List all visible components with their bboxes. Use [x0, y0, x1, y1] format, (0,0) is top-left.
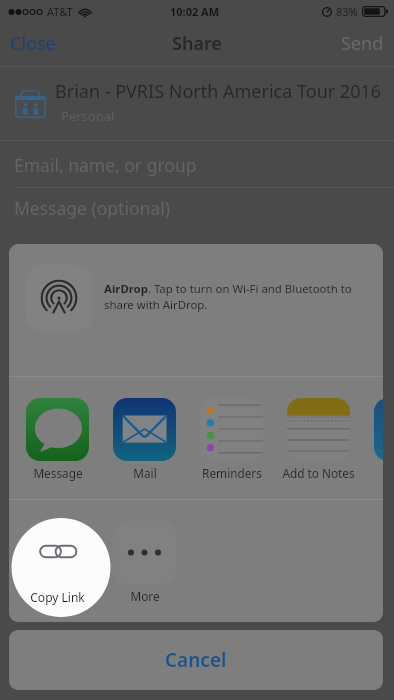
button[interactable]: AirDrop. Tap to turn on Wi-Fi and Blueto…	[9, 244, 383, 376]
staticText: Add to Notes	[282, 465, 355, 481]
staticText: Mail	[133, 465, 157, 481]
staticText: AT&T	[47, 4, 73, 19]
staticText: Message	[33, 465, 83, 481]
button[interactable]: Send	[331, 25, 394, 62]
staticText: Send	[341, 31, 384, 56]
button[interactable]	[26, 398, 89, 485]
staticText: Email, name, or group	[14, 153, 197, 177]
button[interactable]: Cancel	[9, 630, 383, 690]
staticText: 83%	[336, 4, 358, 19]
staticText: Copy Link	[31, 588, 85, 604]
staticText: More	[130, 588, 160, 604]
button[interactable]: Brian - PVRIS North America Tour 2016	[0, 67, 394, 140]
button[interactable]	[200, 398, 263, 485]
button[interactable]	[113, 521, 176, 608]
staticText: Copy Link	[30, 589, 85, 605]
staticText: AirDrop. Tap to turn on Wi-Fi and Blueto…	[104, 281, 352, 313]
staticText: 10:02 AM	[170, 4, 220, 19]
button[interactable]: Close	[0, 25, 66, 62]
button[interactable]: Email, name, or group	[0, 141, 394, 187]
staticText: Brian - PVRIS North America Tour 2016	[55, 79, 382, 104]
staticText: Close	[10, 31, 56, 56]
staticText: Message (optional)	[14, 196, 170, 220]
button[interactable]	[374, 398, 383, 485]
button[interactable]	[26, 521, 89, 608]
staticText: Cancel	[165, 647, 227, 673]
staticText: Share	[172, 31, 222, 56]
button[interactable]	[113, 398, 176, 485]
staticText: Personal	[61, 107, 115, 125]
staticText: Reminders	[202, 465, 262, 481]
button[interactable]: Message (optional)	[0, 188, 394, 234]
button[interactable]	[287, 398, 350, 485]
